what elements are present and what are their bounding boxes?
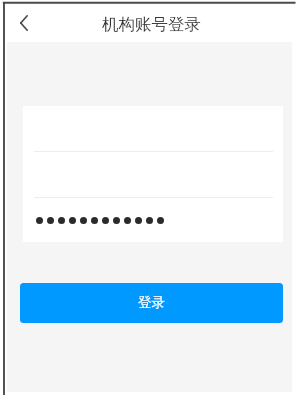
button[interactable]: Back xyxy=(7,6,41,40)
staticText: 登录 xyxy=(138,294,165,311)
staticText: 机构账号登录 xyxy=(102,14,201,35)
button[interactable]: 登录 xyxy=(20,283,283,323)
button[interactable]: 密码 xyxy=(23,198,283,242)
